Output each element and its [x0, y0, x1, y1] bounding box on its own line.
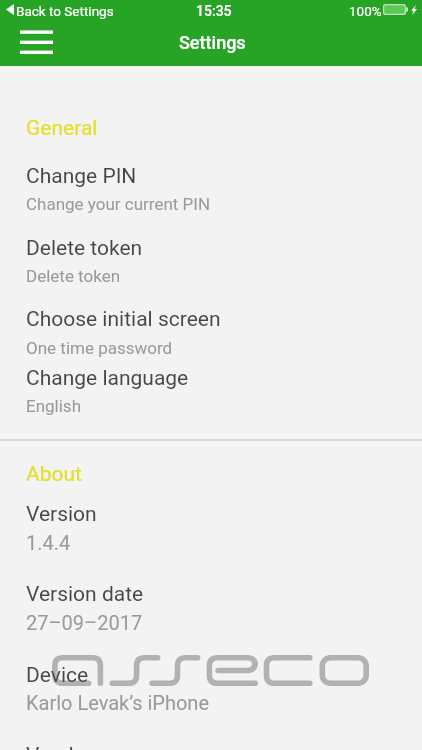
- staticText: English: [26, 396, 82, 416]
- staticText: Choose initial screen: [26, 307, 221, 332]
- staticText: Karlo Levak’s iPhone: [26, 691, 209, 714]
- button[interactable]: [0, 731, 422, 750]
- staticText: Change your current PIN: [26, 194, 211, 214]
- staticText: Settings: [179, 32, 246, 53]
- staticText: About: [26, 462, 82, 487]
- staticText: 27–09–2017: [26, 611, 143, 634]
- button[interactable]: [0, 224, 422, 288]
- staticText: Vendor: [26, 743, 93, 750]
- button[interactable]: Menu: [12, 24, 61, 60]
- staticText: 15:35: [196, 3, 232, 19]
- staticText: Version date: [26, 582, 144, 607]
- button[interactable]: [0, 651, 422, 713]
- button[interactable]: [0, 354, 422, 418]
- staticText: Change language: [26, 366, 189, 391]
- staticText: 100%: [349, 3, 382, 19]
- button[interactable]: [0, 490, 422, 553]
- button[interactable]: [0, 152, 422, 216]
- staticText: Delete token: [26, 236, 143, 261]
- staticText: Device: [26, 663, 89, 688]
- staticText: Change PIN: [26, 164, 137, 189]
- staticText: One time password: [26, 338, 173, 358]
- button[interactable]: [0, 295, 422, 360]
- staticText: Back to Settings: [16, 3, 114, 19]
- button[interactable]: Back to Settings: [2, 0, 114, 22]
- staticText: Version: [26, 502, 97, 527]
- button[interactable]: [0, 570, 422, 633]
- staticText: 1.4.4: [26, 531, 71, 554]
- staticText: General: [26, 116, 98, 141]
- staticText: Delete token: [26, 266, 121, 286]
